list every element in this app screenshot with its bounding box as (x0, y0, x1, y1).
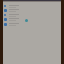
button[interactable] (3, 22, 61, 27)
button[interactable]: Create (25, 19, 28, 22)
button[interactable] (3, 17, 61, 22)
button[interactable] (3, 8, 61, 13)
button[interactable] (3, 13, 61, 17)
button[interactable] (3, 4, 61, 8)
